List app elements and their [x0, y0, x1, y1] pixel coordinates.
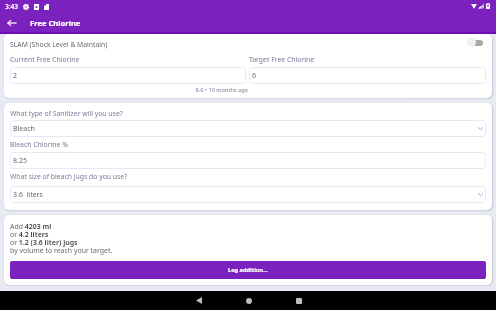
button[interactable]: Log addition... [10, 261, 486, 279]
button[interactable]: 3.6 liters [10, 186, 486, 203]
staticText: 2 [13, 71, 18, 81]
staticText: Add 4203 ml or 4.2 liters or 1.2 (3.6 li… [10, 222, 113, 255]
staticText: Bleach Chlorine % [10, 140, 68, 149]
staticText: What type of Sanitizer will you use? [10, 109, 123, 118]
staticText: 8.0 • 10 months ago [12, 86, 248, 94]
button[interactable]: Navigate up [0, 12, 22, 34]
staticText: Current Free Chlorine [10, 55, 80, 64]
button[interactable]: Back [189, 291, 208, 310]
button[interactable]: 6 [249, 67, 486, 84]
button[interactable]: 8.25 [10, 152, 486, 169]
staticText: What size of bleach jugs do you use? [10, 172, 128, 181]
staticText: Free Chlorine [30, 18, 81, 28]
staticText: 3:43 [5, 2, 19, 11]
button[interactable]: Recent apps [289, 291, 308, 310]
button[interactable]: 2 [10, 67, 246, 84]
button[interactable]: Bleach [10, 120, 486, 137]
staticText: Target Free Chlorine [249, 55, 315, 64]
staticText: 8.25 [13, 156, 27, 166]
staticText: 3.6 liters [13, 190, 43, 200]
staticText: Bleach [13, 124, 35, 134]
staticText: 6 [252, 71, 257, 81]
button[interactable]: Home [239, 291, 258, 310]
button[interactable]: Toggle SLAM [467, 36, 487, 49]
staticText: SLAM (Shock Level & Maintain) [10, 40, 108, 49]
staticText: Log addition... [228, 266, 268, 274]
